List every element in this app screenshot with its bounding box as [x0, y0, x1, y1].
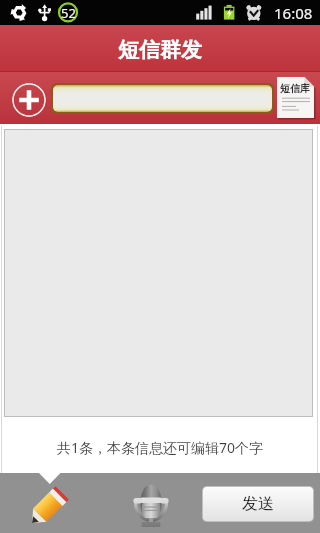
staticText: 共1条，本条信息还可编辑70个字 [57, 438, 264, 457]
button[interactable] [53, 85, 272, 112]
button[interactable]: 编辑 [27, 486, 69, 528]
staticText: 短信群发 [118, 37, 202, 63]
staticText: 52 [61, 4, 76, 22]
button[interactable]: 语音输入 [128, 482, 174, 528]
staticText: 16:08 [274, 3, 313, 23]
button[interactable]: 发送 [203, 487, 313, 521]
button[interactable]: 短信库 [277, 77, 314, 118]
button[interactable]: 添加联系人 [12, 83, 46, 117]
staticText: 短信库 [280, 82, 310, 95]
staticText: 发送 [242, 494, 274, 514]
